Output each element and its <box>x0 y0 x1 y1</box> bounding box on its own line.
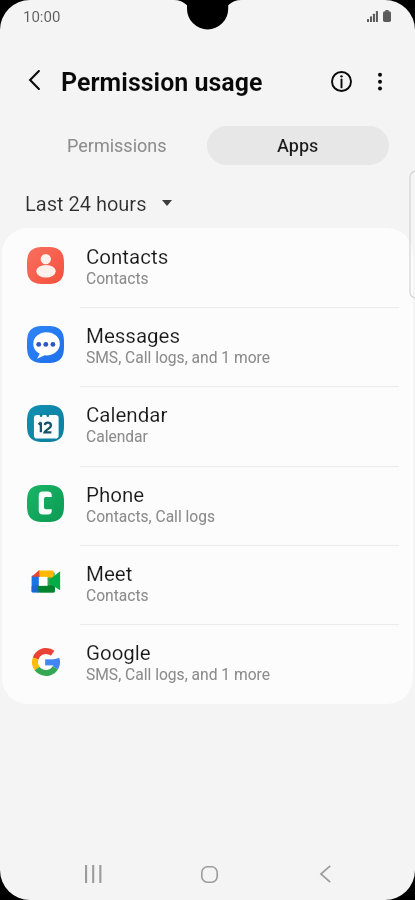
staticText: Contacts <box>86 270 149 288</box>
staticText: Calendar <box>86 403 168 427</box>
staticText: Apps <box>277 135 319 156</box>
staticText: Permission usage <box>61 68 263 97</box>
staticText: Contacts <box>86 245 169 269</box>
button[interactable]: Home <box>183 848 235 900</box>
button[interactable]: Calendar <box>2 386 413 465</box>
staticText: 10:00 <box>23 8 61 26</box>
button[interactable]: Back <box>299 848 351 900</box>
button[interactable]: Navigate up <box>12 58 56 102</box>
staticText: Last 24 hours <box>25 192 147 215</box>
button[interactable]: Messages <box>2 307 413 386</box>
button[interactable]: Recent apps <box>67 848 119 900</box>
button[interactable]: Last 24 hours <box>25 186 172 220</box>
staticText: Contacts, Call logs <box>86 508 216 526</box>
staticText: Permissions <box>67 135 167 156</box>
button[interactable]: Apps <box>207 126 389 165</box>
staticText: Phone <box>86 483 145 507</box>
button[interactable]: Phone <box>2 466 413 545</box>
staticText: Google <box>86 641 151 665</box>
button[interactable]: Google <box>2 624 413 703</box>
staticText: SMS, Call logs, and 1 more <box>86 666 270 684</box>
staticText: Calendar <box>86 428 148 446</box>
staticText: Messages <box>86 324 181 348</box>
staticText: SMS, Call logs, and 1 more <box>86 349 270 367</box>
button[interactable]: Information <box>319 59 363 103</box>
staticText: Meet <box>86 562 133 586</box>
button[interactable]: More options <box>358 59 402 103</box>
button[interactable]: Contacts <box>2 228 413 307</box>
staticText: Contacts <box>86 587 149 605</box>
button[interactable]: Meet <box>2 545 413 624</box>
button[interactable]: Permissions <box>26 126 208 165</box>
